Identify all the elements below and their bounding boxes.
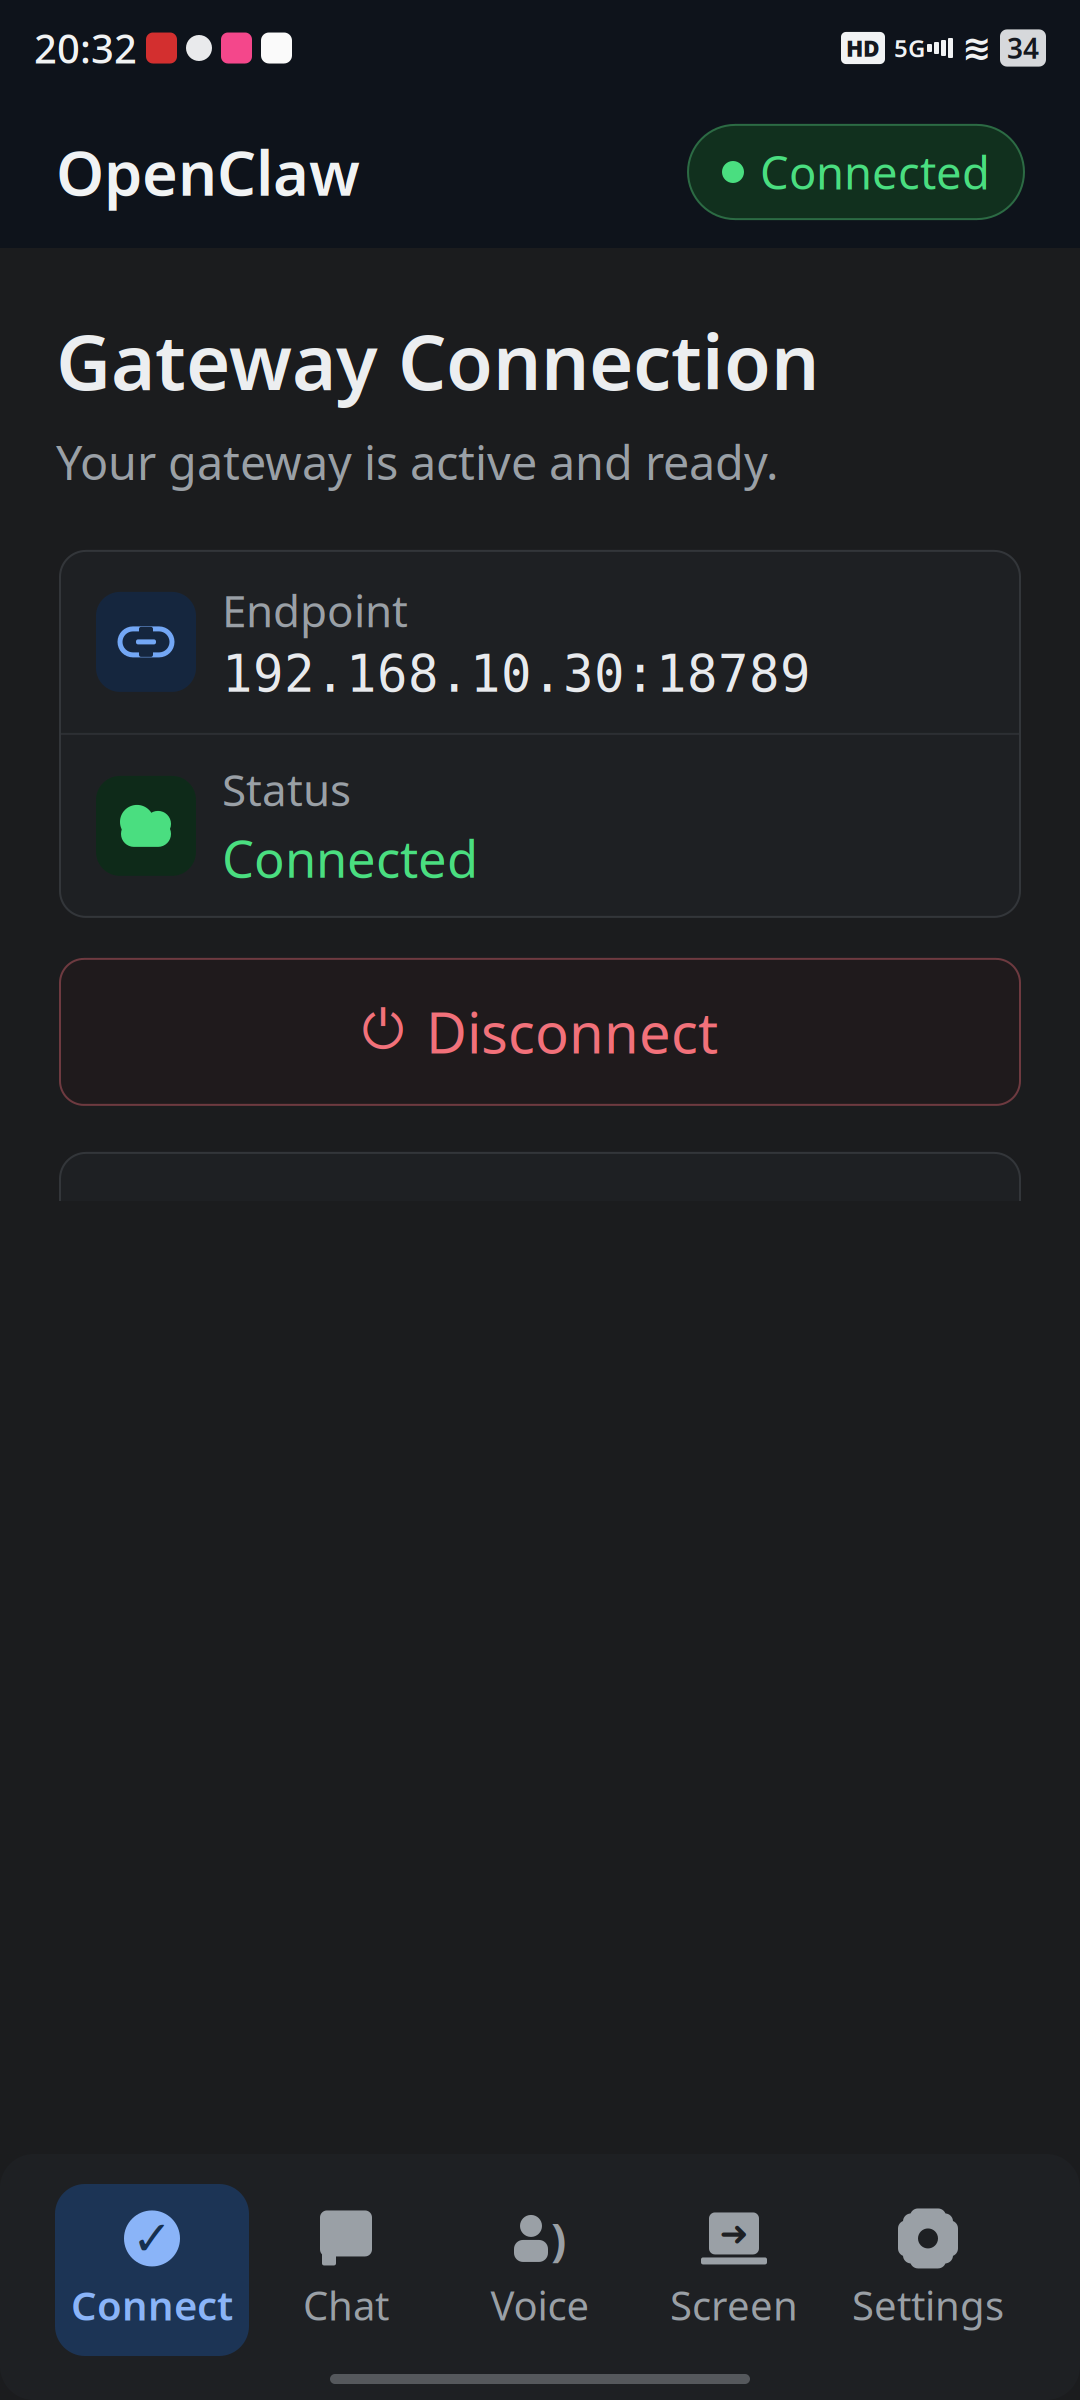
staticText: Your gateway is active and ready.: [56, 431, 779, 493]
button[interactable]: ✓: [55, 2184, 249, 2356]
button[interactable]: ⏻: [60, 959, 1020, 1105]
staticText: ⏻: [362, 1006, 404, 1058]
staticText: Connected: [222, 824, 478, 892]
staticText: ≋: [962, 28, 991, 68]
staticText: HD: [846, 33, 880, 63]
staticText: Screen: [670, 2278, 798, 2331]
button[interactable]: Connected: [688, 125, 1024, 219]
staticText: 5G: [894, 32, 925, 64]
staticText: OpenClaw: [56, 131, 360, 213]
staticText: ➜: [719, 2214, 748, 2253]
staticText: Chat: [303, 2278, 389, 2331]
button[interactable]: Settings: [831, 2184, 1025, 2356]
staticText: 34: [1007, 29, 1039, 67]
staticText: Disconnect: [426, 995, 718, 1069]
staticText: Endpoint: [222, 581, 408, 639]
staticText: 192.168.10.30:18789: [222, 645, 811, 703]
staticText: Gateway Connection: [56, 310, 819, 411]
staticText: Status: [222, 760, 351, 818]
staticText: Settings: [852, 2278, 1004, 2331]
button[interactable]: ): [443, 2184, 637, 2356]
staticText: Connect: [71, 2278, 233, 2331]
button[interactable]: ➜: [637, 2184, 831, 2356]
staticText: ✓: [132, 2211, 172, 2266]
staticText: ): [551, 2208, 566, 2268]
staticText: Connected: [760, 142, 990, 202]
staticText: 20:32: [34, 21, 137, 74]
button[interactable]: Chat: [249, 2184, 443, 2356]
staticText: Voice: [490, 2278, 589, 2331]
